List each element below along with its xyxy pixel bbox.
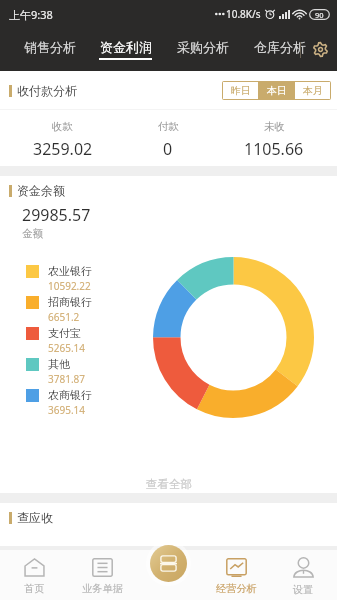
- staticText: 资金利润: [100, 39, 152, 55]
- button[interactable]: 业务单据: [68, 550, 136, 600]
- staticText: 其他: [48, 357, 70, 371]
- staticText: 3259.02: [33, 138, 93, 160]
- button[interactable]: 未收: [221, 110, 327, 166]
- button[interactable]: 付款: [115, 110, 221, 166]
- button[interactable]: 新建单据: [150, 545, 187, 582]
- button[interactable]: 设置: [270, 550, 337, 600]
- button[interactable]: 查看全部: [0, 468, 337, 493]
- staticText: 昨日: [231, 84, 251, 97]
- staticText: 5265.14: [48, 341, 85, 355]
- staticText: 上午9:38: [9, 7, 53, 22]
- staticText: 付款: [158, 120, 179, 133]
- staticText: 收款: [52, 120, 73, 133]
- staticText: 农业银行: [48, 264, 92, 278]
- staticText: 招商银行: [48, 295, 92, 309]
- button[interactable]: 昨日: [223, 82, 258, 99]
- staticText: 资金余额: [17, 183, 65, 198]
- button[interactable]: 经营分析: [203, 550, 270, 600]
- staticText: 支付宝: [48, 326, 81, 340]
- staticText: 6651.2: [48, 310, 80, 324]
- staticText: 经营分析: [216, 582, 257, 595]
- button[interactable]: 本月: [295, 82, 330, 99]
- staticText: 10.8K/s: [226, 7, 261, 21]
- button[interactable]: 首页: [0, 550, 68, 600]
- staticText: 仓库分析: [254, 39, 306, 55]
- staticText: 农商银行: [48, 388, 92, 402]
- button[interactable]: 收款: [10, 110, 115, 166]
- staticText: 10592.22: [48, 279, 91, 293]
- button[interactable]: 资金利润: [87, 28, 164, 71]
- staticText: 查看全部: [146, 477, 192, 491]
- staticText: 查应收: [17, 510, 53, 525]
- staticText: 未收: [264, 120, 285, 133]
- staticText: 3781.87: [48, 372, 85, 386]
- button[interactable]: 本日: [259, 82, 294, 99]
- staticText: 1105.66: [244, 138, 304, 160]
- button[interactable]: 销售分析: [11, 28, 87, 71]
- staticText: 3695.14: [48, 403, 85, 417]
- staticText: 采购分析: [177, 39, 229, 55]
- staticText: 29985.57: [22, 204, 91, 226]
- staticText: 业务单据: [82, 582, 123, 595]
- button[interactable]: 设置: [303, 28, 337, 71]
- button[interactable]: 采购分析: [164, 28, 241, 71]
- staticText: 销售分析: [24, 39, 76, 55]
- staticText: 本日: [267, 84, 287, 97]
- button[interactable]: 仓库分析: [241, 28, 318, 71]
- staticText: 金额: [22, 227, 43, 240]
- staticText: 90: [315, 10, 324, 20]
- staticText: 设置: [293, 583, 314, 596]
- staticText: 收付款分析: [17, 83, 77, 98]
- staticText: 本月: [303, 84, 323, 97]
- staticText: 0: [163, 138, 173, 160]
- staticText: 首页: [24, 582, 45, 595]
